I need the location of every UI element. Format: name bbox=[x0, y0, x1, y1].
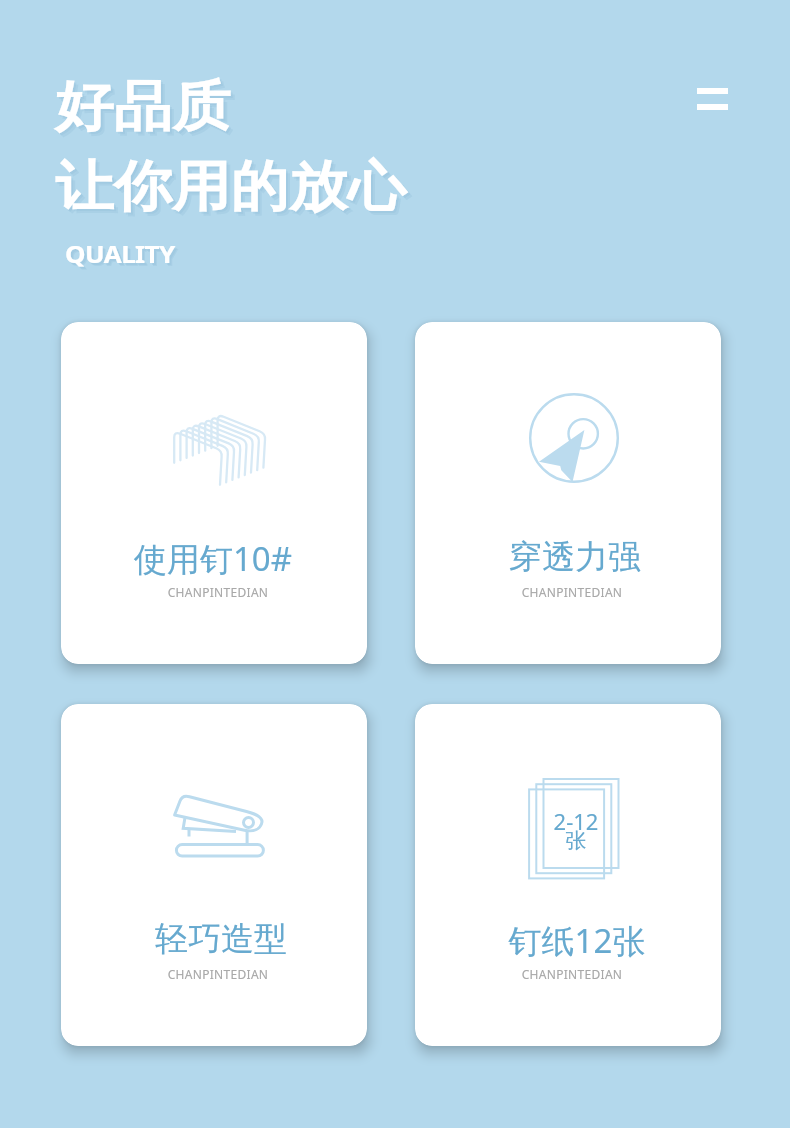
staticText: 好品质 bbox=[57, 75, 233, 143]
staticText: 让你用的放心 bbox=[59, 157, 410, 225]
button[interactable]: 使用钉10# bbox=[61, 322, 367, 664]
staticText: CHANPINTEDIAN bbox=[65, 584, 367, 600]
staticText: 钉纸12张 bbox=[424, 918, 721, 963]
button[interactable]: Menu bbox=[688, 75, 736, 123]
staticText: QUALITY bbox=[65, 237, 175, 269]
button[interactable]: 轻巧造型 bbox=[61, 704, 367, 1046]
staticText: CHANPINTEDIAN bbox=[419, 584, 721, 600]
staticText: QUALITY bbox=[67, 239, 177, 271]
staticText: CHANPINTEDIAN bbox=[419, 966, 721, 982]
button[interactable]: 穿透力强 bbox=[415, 322, 721, 664]
staticText: 使用钉10# bbox=[61, 536, 366, 581]
staticText: 让你用的放心 bbox=[55, 153, 406, 221]
staticText: 好品质 bbox=[59, 77, 235, 145]
staticText: 好品质 bbox=[55, 73, 231, 141]
staticText: 张 bbox=[531, 828, 621, 854]
staticText: 轻巧造型 bbox=[68, 918, 367, 960]
button[interactable]: 2-12 bbox=[415, 704, 721, 1046]
staticText: 让你用的放心 bbox=[57, 155, 408, 223]
staticText: 2-12 bbox=[531, 806, 621, 836]
staticText: QUALITY bbox=[68, 240, 178, 272]
staticText: 穿透力强 bbox=[422, 536, 721, 578]
staticText: CHANPINTEDIAN bbox=[65, 966, 367, 982]
